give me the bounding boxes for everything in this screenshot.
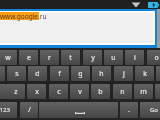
button[interactable] [0, 84, 6, 99]
button[interactable]: w [0, 50, 17, 65]
button[interactable]: s [7, 66, 26, 81]
button[interactable]: e [19, 50, 38, 65]
staticText: x [35, 87, 39, 97]
staticText: b [98, 87, 103, 97]
button[interactable]: r [40, 50, 59, 65]
staticText: www.google.ru [0, 12, 47, 21]
button[interactable]: v [70, 84, 89, 99]
button[interactable]: z [6, 84, 25, 99]
button[interactable]: b [91, 84, 110, 99]
staticText: f [58, 69, 61, 79]
staticText: n [120, 87, 125, 97]
button[interactable]: Battery charging [148, 2, 159, 8]
staticText: m [140, 87, 147, 97]
button[interactable]: j [114, 66, 133, 81]
button[interactable]: i [125, 50, 144, 65]
button[interactable]: Wi-Fi signal [131, 1, 141, 9]
staticText: e [27, 53, 31, 63]
staticText: y [91, 53, 95, 63]
staticText: h [99, 69, 104, 79]
button[interactable]: d [28, 66, 47, 81]
button[interactable]: x [27, 84, 46, 99]
button[interactable]: f [50, 66, 69, 81]
button[interactable]: g [71, 66, 90, 81]
staticText: g [78, 69, 83, 79]
staticText: Go [150, 106, 158, 114]
staticText: r [48, 53, 51, 63]
staticText: j [123, 69, 125, 79]
button[interactable]: k [135, 66, 154, 81]
staticText: i [134, 53, 136, 63]
staticText: / [28, 105, 31, 115]
button[interactable]: / [20, 102, 38, 118]
staticText: u [111, 53, 116, 63]
button[interactable] [156, 66, 160, 81]
staticText: ?123 [0, 106, 10, 114]
button[interactable]: o [147, 50, 160, 65]
button[interactable]: t [61, 50, 80, 65]
button[interactable]: ?123 [0, 102, 17, 118]
staticText: v [78, 87, 82, 97]
button[interactable]: u [104, 50, 123, 65]
staticText: w [5, 53, 11, 63]
button[interactable]: . [120, 102, 138, 118]
button[interactable]: h [92, 66, 111, 81]
button[interactable] [155, 84, 160, 99]
staticText: o [154, 53, 159, 63]
button[interactable]: c [49, 84, 68, 99]
button[interactable] [0, 66, 5, 81]
staticText: k [143, 69, 147, 79]
staticText: d [35, 69, 40, 79]
staticText: z [14, 87, 18, 97]
staticText: s [15, 69, 19, 79]
staticText: . [128, 105, 130, 115]
staticText: c [57, 87, 61, 97]
button[interactable] [39, 102, 118, 118]
button[interactable]: n [113, 84, 132, 99]
button[interactable]: y [83, 50, 102, 65]
button[interactable]: m [134, 84, 153, 99]
button[interactable]: Go [140, 102, 160, 118]
staticText: t [69, 53, 72, 63]
